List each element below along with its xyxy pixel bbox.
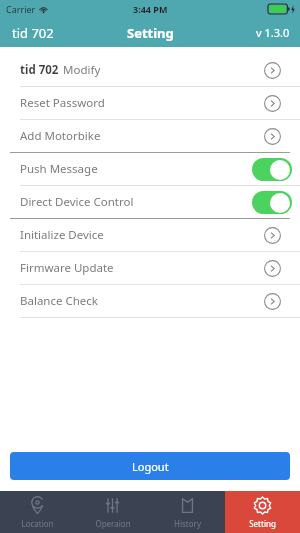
staticText: 3:44 PM (133, 3, 168, 15)
staticText: Initialize Device (20, 227, 104, 243)
staticText: Setting (249, 518, 276, 529)
staticText: tid 702 (12, 24, 54, 42)
button[interactable]: Push Message (0, 153, 300, 185)
button[interactable]: Firmware Update (0, 252, 300, 284)
staticText: Push Message (20, 161, 98, 177)
button[interactable]: History (150, 491, 225, 533)
staticText: Balance Check (20, 293, 98, 309)
staticText: Location (21, 518, 54, 529)
staticText: Firmware Update (20, 260, 114, 276)
staticText: Reset Password (20, 95, 105, 111)
button[interactable]: Direct Device Control toggle, on (252, 191, 292, 214)
button[interactable]: Operaion (75, 491, 150, 533)
button[interactable]: Reset Password (0, 87, 300, 119)
staticText: History (174, 518, 201, 529)
staticText: Modify (63, 62, 101, 78)
staticText: tid 702 (20, 62, 59, 78)
button[interactable]: Setting (225, 491, 300, 533)
staticText: Carrier (6, 3, 36, 15)
button[interactable]: Add Motorbike (0, 120, 300, 152)
staticText: Add Motorbike (20, 128, 101, 144)
button[interactable]: Location (0, 491, 75, 533)
staticText: Logout (132, 459, 169, 474)
staticText: Direct Device Control (20, 194, 134, 210)
button[interactable]: Push Message toggle, on (252, 158, 292, 181)
button[interactable]: Initialize Device (0, 219, 300, 251)
staticText: v 1.3.0 (256, 25, 290, 40)
button[interactable]: Direct Device Control (0, 186, 300, 218)
button[interactable]: Logout (10, 452, 290, 480)
staticText: Setting (127, 24, 174, 42)
button[interactable]: tid 702 (0, 54, 300, 86)
button[interactable]: Balance Check (0, 285, 300, 317)
staticText: Operaion (95, 518, 131, 529)
